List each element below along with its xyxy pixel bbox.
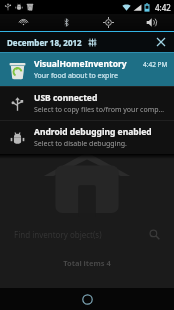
staticText: Your food about to expire — [34, 71, 118, 81]
staticText: 4:42 — [155, 2, 171, 13]
button[interactable]: Location — [88, 14, 128, 31]
button[interactable]: Android debugging enabled — [0, 121, 174, 154]
staticText: Android debugging enabled — [34, 126, 152, 138]
button[interactable]: Volume — [131, 14, 171, 31]
button[interactable]: Bluetooth — [46, 14, 86, 31]
staticText: No service. — [65, 290, 109, 302]
button[interactable]: Home — [76, 288, 98, 310]
staticText: Total items 4 — [63, 258, 111, 268]
staticText: Find inventory object(s) — [14, 229, 102, 240]
button[interactable]: Settings — [86, 36, 99, 49]
button[interactable]: USB connected — [0, 87, 174, 120]
button[interactable]: Find inventory object(s) — [0, 224, 174, 244]
button[interactable]: Wi-Fi — [3, 14, 43, 31]
staticText: December 18, 2012 — [7, 37, 82, 48]
button[interactable]: VisualHomeInventory — [0, 53, 174, 86]
staticText: VisualHomeInventory — [34, 58, 127, 70]
staticText: USB connected — [34, 92, 98, 104]
staticText: Select to disable debugging. — [34, 139, 127, 149]
button[interactable]: Clear all notifications — [153, 34, 169, 50]
staticText: 4:42 PM — [143, 60, 168, 69]
staticText: Select to copy files to/from your comput… — [34, 105, 168, 115]
